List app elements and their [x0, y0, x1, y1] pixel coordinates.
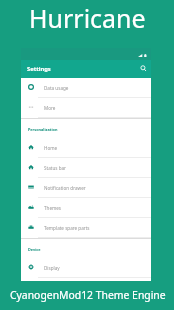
staticText: Template spare parts	[44, 225, 90, 231]
button[interactable]: Data usage	[21, 78, 151, 98]
button[interactable]: Search	[136, 61, 151, 76]
staticText: Notification drawer	[44, 185, 86, 191]
button[interactable]: Template spare parts	[21, 218, 151, 238]
button[interactable]: Home	[21, 138, 151, 158]
staticText: Device	[28, 247, 41, 252]
button[interactable]: Display	[21, 258, 151, 278]
staticText: Data usage	[44, 85, 69, 91]
staticText: More	[44, 105, 56, 111]
button[interactable]: More	[21, 98, 151, 118]
button[interactable]: Themes	[21, 198, 151, 218]
staticText: Settings	[27, 65, 51, 73]
button[interactable]: Status bar	[21, 158, 151, 178]
staticText: Hurricane	[29, 1, 146, 35]
button[interactable]: Notification drawer	[21, 178, 151, 198]
staticText: Status bar	[44, 165, 66, 171]
staticText: Personalization	[28, 127, 58, 132]
staticText: Display	[44, 265, 60, 271]
staticText: Home	[44, 145, 58, 151]
staticText: Themes	[44, 205, 62, 211]
staticText: CyanogenMod12 Theme Engine	[10, 288, 166, 302]
